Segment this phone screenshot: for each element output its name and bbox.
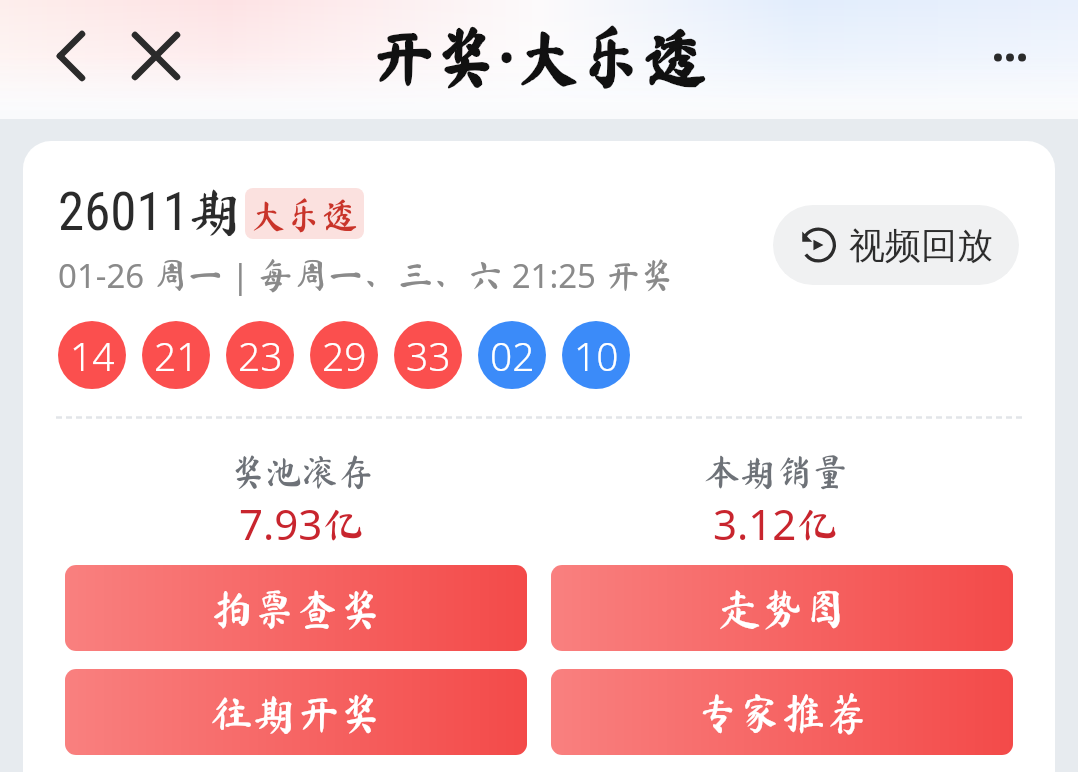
staticText: 视频回放 <box>849 223 993 268</box>
staticText: 14 <box>70 329 115 382</box>
staticText: 7.93亿 <box>239 495 365 552</box>
staticText: 21 <box>154 329 199 382</box>
staticText: 10 <box>574 329 619 382</box>
staticText: 本期销量 <box>704 453 849 489</box>
staticText: 02 <box>490 329 535 382</box>
staticText: 奖池滚存 <box>230 453 375 489</box>
button[interactable]: 专家推荐 <box>551 669 1013 755</box>
button[interactable]: Back <box>42 24 100 88</box>
staticText: 23 <box>238 329 283 382</box>
button[interactable]: 拍票查奖 <box>65 565 527 651</box>
staticText: 26011期 <box>58 181 242 243</box>
button[interactable]: Close <box>124 24 188 88</box>
button[interactable]: More options <box>978 25 1042 89</box>
staticText: 拍票查奖 <box>210 587 382 630</box>
staticText: 开奖·大乐透 <box>370 12 708 99</box>
button[interactable]: 视频回放 <box>773 205 1019 285</box>
staticText: 开奖·大乐透 <box>370 12 708 99</box>
staticText: 33 <box>406 329 451 382</box>
staticText: 往期开奖 <box>210 691 382 734</box>
staticText: 01-26 周一 | 每周一、三、六 21:25 开奖 <box>58 253 675 298</box>
staticText: 29 <box>322 329 367 382</box>
button[interactable]: 往期开奖 <box>65 669 527 755</box>
staticText: 3.12亿 <box>713 495 839 552</box>
staticText: 专家推荐 <box>696 691 868 734</box>
button[interactable]: 走势图 <box>551 565 1013 651</box>
staticText: 走势图 <box>718 587 847 630</box>
staticText: 大乐透 <box>250 196 359 232</box>
